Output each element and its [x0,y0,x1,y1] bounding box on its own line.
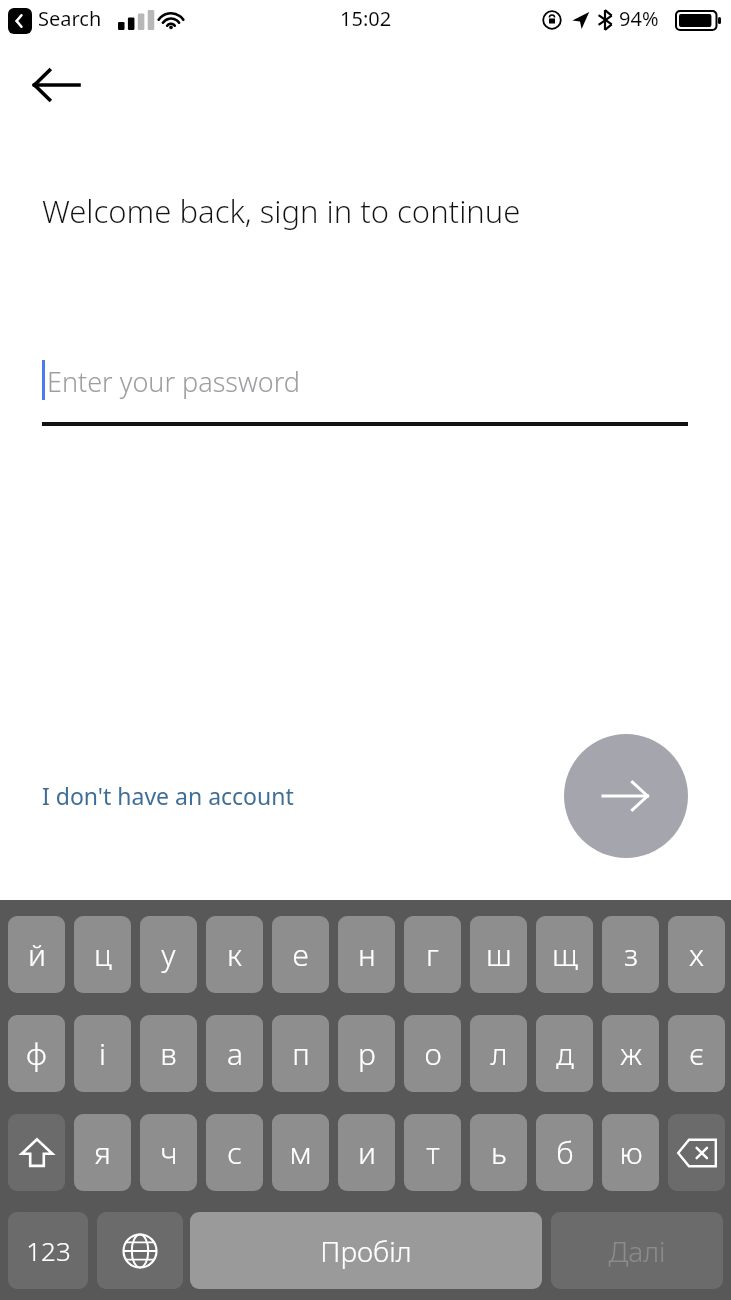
staticText: ь [491,1132,507,1173]
button[interactable]: Key [668,1114,725,1191]
staticText: 94% [619,5,659,32]
staticText: Welcome back, sign in to continue [42,190,521,232]
button[interactable]: я [74,1114,131,1191]
button[interactable]: е [272,916,329,993]
staticText: 15:02 [340,5,392,32]
staticText: Далі [608,1232,666,1270]
button[interactable]: в [140,1015,197,1092]
button[interactable]: є [668,1015,725,1092]
staticText: ч [160,1132,178,1173]
staticText: р [358,1033,376,1074]
staticText: у [161,934,176,975]
button[interactable]: Key [8,1114,65,1191]
button[interactable]: Enter your password [42,352,688,428]
staticText: ц [94,934,112,975]
button[interactable]: о [404,1015,461,1092]
staticText: Enter your password [47,363,301,400]
staticText: п [292,1033,310,1074]
button[interactable]: л [470,1015,527,1092]
button[interactable]: з [602,916,659,993]
button[interactable]: б [536,1114,593,1191]
staticText: т [426,1132,440,1173]
staticText: і [99,1033,106,1074]
button[interactable]: т [404,1114,461,1191]
staticText: Search [38,5,102,32]
staticText: д [556,1033,574,1074]
other: Shift [20,1136,54,1170]
button[interactable]: с [206,1114,263,1191]
staticText: щ [552,934,578,975]
button[interactable]: д [536,1015,593,1092]
staticText: ж [620,1033,642,1074]
staticText: з [624,934,638,975]
button[interactable]: 123 [8,1212,88,1289]
button[interactable]: ц [74,916,131,993]
button[interactable]: Пробіл [190,1212,542,1289]
button[interactable]: р [338,1015,395,1092]
staticText: м [289,1132,312,1173]
button[interactable]: х [668,916,725,993]
button[interactable]: а [206,1015,263,1092]
button[interactable]: щ [536,916,593,993]
button[interactable]: у [140,916,197,993]
button[interactable]: н [338,916,395,993]
other: Backspace [677,1138,717,1168]
button[interactable]: ж [602,1015,659,1092]
button[interactable]: ь [470,1114,527,1191]
staticText: б [556,1132,574,1173]
staticText: в [160,1033,177,1074]
button[interactable]: м [272,1114,329,1191]
staticText: 123 [26,1233,71,1268]
button[interactable]: и [338,1114,395,1191]
staticText: н [358,934,376,975]
staticText: х [689,934,704,975]
button[interactable]: ч [140,1114,197,1191]
button[interactable]: г [404,916,461,993]
button[interactable]: і [74,1015,131,1092]
staticText: л [490,1033,508,1074]
staticText: с [227,1132,242,1173]
button[interactable]: к [206,916,263,993]
staticText: ф [26,1033,47,1074]
staticText: о [424,1033,442,1074]
button[interactable]: Далі [551,1212,723,1289]
other: Change keyboard language [122,1233,158,1269]
staticText: є [689,1033,704,1074]
button[interactable]: п [272,1015,329,1092]
button[interactable]: I don't have an account [42,778,294,813]
button[interactable]: ш [470,916,527,993]
button[interactable]: ю [602,1114,659,1191]
staticText: Пробіл [320,1232,412,1270]
button[interactable]: Continue [564,734,688,858]
staticText: а [227,1033,243,1074]
button[interactable]: й [8,916,65,993]
staticText: г [426,934,439,975]
button[interactable]: Key [97,1212,183,1289]
staticText: ю [619,1132,643,1173]
button[interactable]: ф [8,1015,65,1092]
button[interactable]: Back [26,58,86,112]
staticText: к [227,934,242,975]
staticText: ш [486,934,512,975]
staticText: и [358,1132,376,1173]
staticText: е [292,934,309,975]
staticText: я [94,1132,111,1173]
staticText: I don't have an account [42,780,294,811]
staticText: й [28,934,46,975]
